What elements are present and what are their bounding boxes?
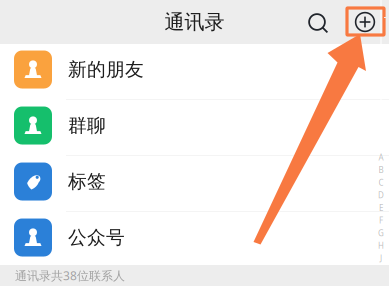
staticText: C — [378, 177, 383, 188]
staticText: A — [378, 152, 383, 163]
staticText: 通讯录 — [164, 10, 224, 34]
staticText: J — [380, 253, 382, 264]
staticText: E — [379, 202, 383, 213]
staticText: 通讯录共38位联系人 — [15, 267, 125, 283]
staticText: 公众号 — [68, 226, 125, 249]
staticText: 新的朋友 — [68, 58, 144, 81]
staticText: D — [378, 190, 384, 200]
button[interactable]: Search — [302, 7, 332, 37]
button[interactable]: 公众号 — [0, 212, 389, 268]
staticText: 群聊 — [68, 114, 106, 137]
staticText: 标签 — [68, 170, 106, 193]
staticText: F — [379, 215, 383, 226]
button[interactable]: 群聊 — [0, 100, 389, 156]
staticText: H — [378, 240, 384, 251]
button[interactable]: Add contact — [350, 7, 380, 37]
button[interactable]: 新的朋友 — [0, 44, 389, 100]
staticText: G — [378, 228, 384, 238]
button[interactable]: 标签 — [0, 156, 389, 212]
staticText: B — [378, 165, 383, 175]
